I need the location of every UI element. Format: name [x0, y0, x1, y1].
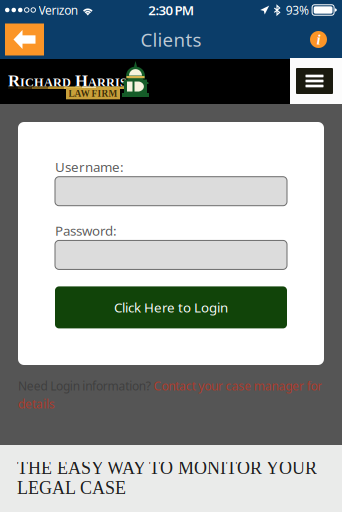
staticText: Username: [55, 158, 124, 176]
staticText: i [316, 31, 320, 48]
staticText: Contact your case manager for [151, 378, 322, 394]
staticText: Verizon [38, 2, 78, 18]
staticText: Need Login information? [18, 378, 151, 394]
staticText: LAW FIRM [68, 88, 117, 99]
staticText: 2:30 PM [148, 1, 194, 19]
staticText: 93% [286, 2, 309, 18]
button[interactable]: Information [306, 25, 331, 53]
staticText: Click Here to Login [114, 299, 228, 316]
staticText: THE EASY WAY TO MONITOR YOUR LEGAL CASE [17, 458, 317, 498]
staticText: Clients [140, 27, 201, 52]
button[interactable]: Click Here to Login [55, 286, 287, 328]
button[interactable]: Back [5, 23, 44, 55]
button[interactable]: Menu [290, 58, 342, 104]
staticText: Password: [55, 222, 117, 239]
staticText: details [18, 396, 55, 412]
staticText: RICHARD HARRIS [8, 72, 127, 90]
button[interactable]: Need Login information? [18, 378, 324, 412]
